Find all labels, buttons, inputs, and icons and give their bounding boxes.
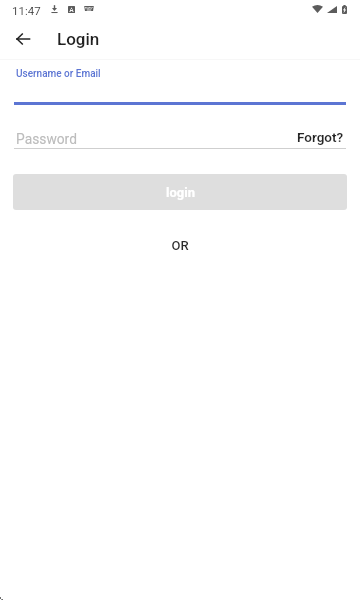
button[interactable]: Back <box>9 25 36 52</box>
staticText: Login <box>57 29 100 49</box>
button[interactable]: Username or Email field <box>14 64 346 105</box>
staticText: Password <box>16 131 77 147</box>
button[interactable]: Forgot? <box>297 129 344 145</box>
staticText: 11:47 <box>12 4 41 17</box>
staticText: OR <box>0 238 360 253</box>
button[interactable]: Password field <box>14 125 346 149</box>
staticText: Username or Email <box>16 68 101 80</box>
staticText: login <box>166 185 195 200</box>
button[interactable]: login <box>13 174 347 210</box>
